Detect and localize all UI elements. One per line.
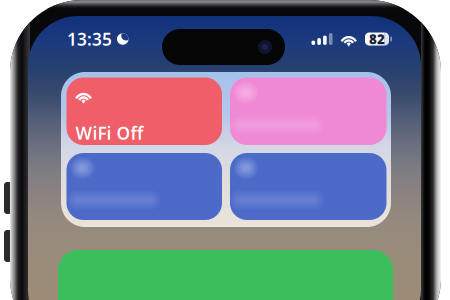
button[interactable]: Toggle	[230, 153, 386, 220]
button[interactable]: WiFi Off	[66, 77, 222, 145]
staticText: 13:35	[67, 27, 112, 50]
button[interactable]: Toggle	[230, 77, 386, 145]
staticText: WiFi Off	[75, 121, 143, 144]
staticText: 82	[369, 30, 385, 48]
button[interactable]: Toggle	[66, 153, 222, 220]
